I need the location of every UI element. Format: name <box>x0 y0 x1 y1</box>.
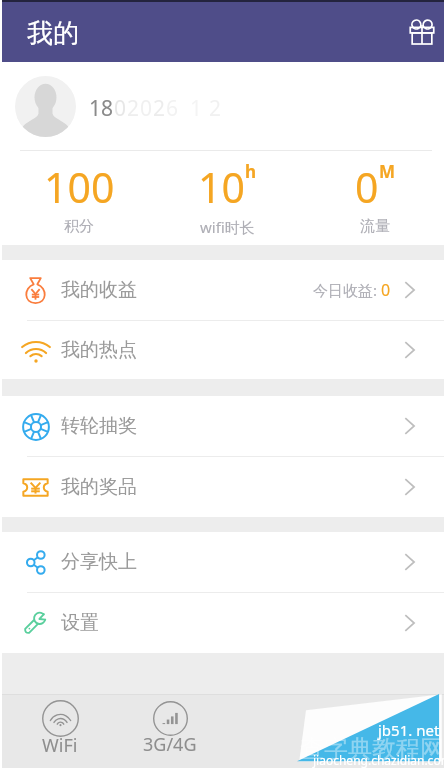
staticText: 我的收益 <box>61 278 137 302</box>
button[interactable]: 我的奖品 <box>0 457 444 517</box>
staticText: 6 <box>166 94 179 123</box>
staticText: 2 <box>127 94 140 123</box>
button[interactable]: 设置 <box>0 593 444 653</box>
staticText: 今日收益: <box>313 280 378 300</box>
staticText: 我的奖品 <box>61 475 137 499</box>
button[interactable]: 18 <box>0 62 444 150</box>
button[interactable]: 转轮抽奖 <box>0 396 444 456</box>
staticText: jb51. net <box>378 720 440 740</box>
staticText: 0 <box>355 159 379 215</box>
staticText: 3G/4G <box>143 732 197 757</box>
button[interactable]: 3G/4G <box>120 694 220 768</box>
button[interactable]: 100 <box>5 151 153 245</box>
button[interactable]: Gifts <box>402 10 442 50</box>
staticText: wifi时长 <box>200 217 255 237</box>
staticText: 18 <box>89 94 114 123</box>
staticText: 流量 <box>360 217 390 236</box>
button[interactable]: WiFi <box>0 694 120 768</box>
button[interactable]: 我的热点 <box>0 321 444 379</box>
staticText: 我的 <box>27 17 79 50</box>
staticText: M <box>379 160 396 183</box>
staticText: 查字典教程网 <box>300 734 444 764</box>
staticText: 我的热点 <box>61 338 137 362</box>
staticText: 设置 <box>61 611 99 635</box>
staticText: 0 <box>381 279 391 301</box>
staticText: 2 <box>153 94 166 123</box>
staticText: 10 <box>198 159 245 215</box>
staticText: 转轮抽奖 <box>61 414 137 438</box>
button[interactable]: 我的收益 <box>0 260 444 320</box>
button[interactable]: 0 <box>301 151 444 245</box>
staticText: 积分 <box>64 217 94 236</box>
staticText: 0 <box>114 94 127 123</box>
staticText: 2 <box>209 94 222 123</box>
button[interactable]: 分享快上 <box>0 532 444 592</box>
staticText: WiFi <box>42 733 78 758</box>
staticText: 分享快上 <box>61 550 137 574</box>
staticText: h <box>245 160 257 183</box>
staticText: 100 <box>44 159 115 215</box>
staticText: 0 <box>140 94 153 123</box>
button[interactable]: 10 <box>153 151 301 245</box>
staticText: jiaocheng.chazidian.com <box>313 752 444 768</box>
